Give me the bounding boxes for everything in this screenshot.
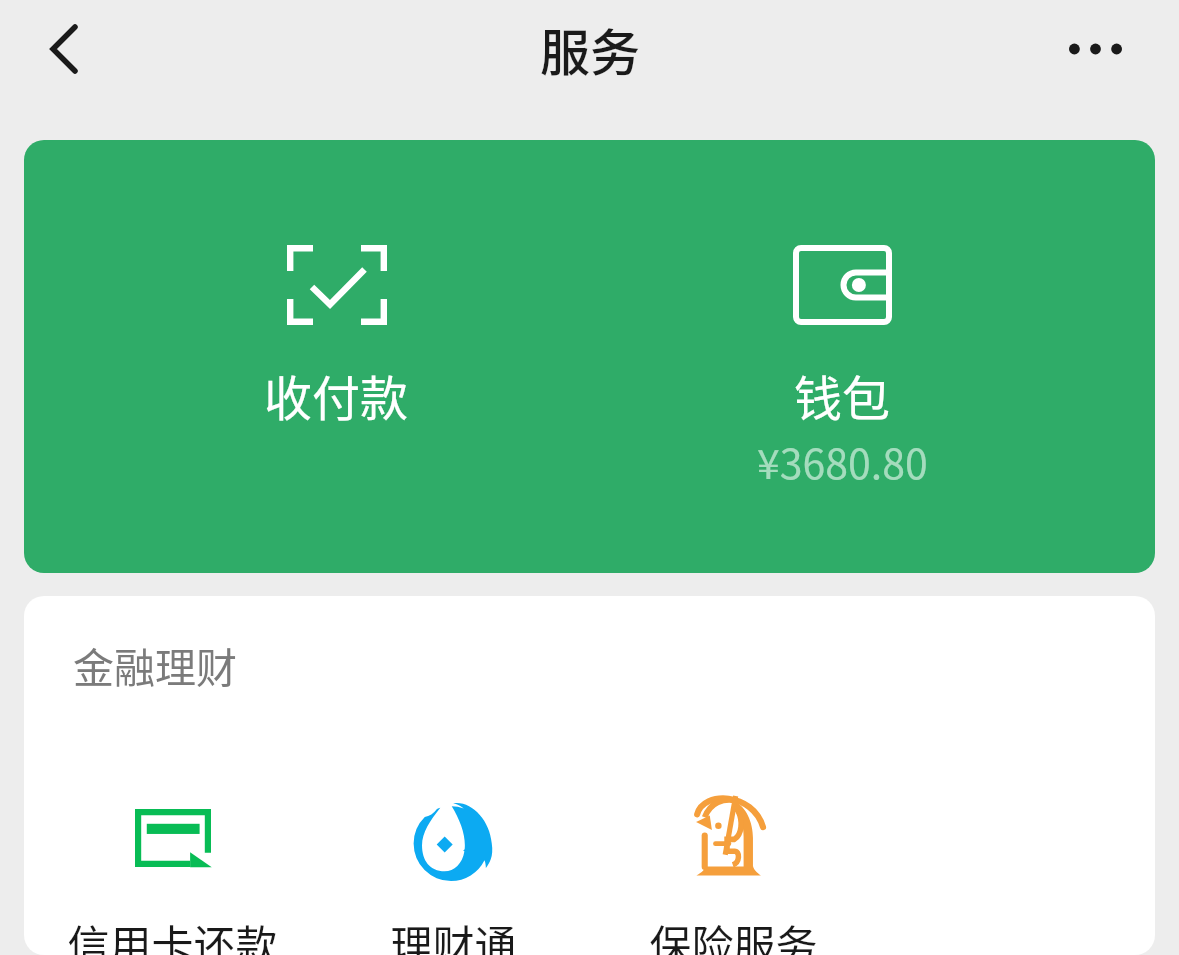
staticText: 理财通 [390, 912, 517, 955]
staticText: 收付款 [264, 360, 409, 430]
button[interactable]: 保险服务 [593, 798, 873, 955]
button[interactable]: 收付款 [83, 140, 589, 573]
button[interactable]: More options [1055, 9, 1135, 89]
button[interactable]: 钱包 [589, 140, 1096, 573]
staticText: ¥3680.80 [757, 431, 928, 490]
staticText: 服务 [540, 13, 640, 85]
button[interactable]: 信用卡还款 [32, 798, 313, 955]
staticText: 信用卡还款 [67, 912, 278, 955]
button[interactable]: 理财通 [313, 798, 593, 955]
staticText: 钱包 [794, 360, 891, 430]
staticText: 保险服务 [649, 912, 818, 955]
staticText: 金融理财 [73, 635, 237, 694]
button[interactable]: Back [24, 9, 104, 89]
